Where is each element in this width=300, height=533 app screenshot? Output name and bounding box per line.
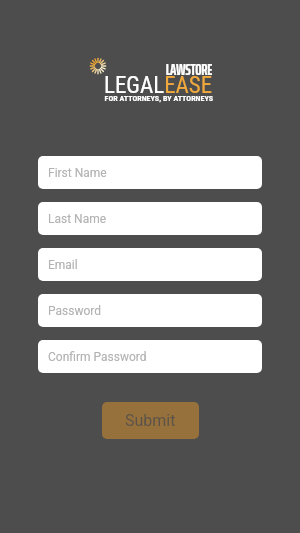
staticText: Password (48, 304, 102, 318)
staticText: First Name (48, 166, 107, 180)
button[interactable]: Email (38, 248, 262, 281)
button[interactable]: First Name (38, 156, 262, 189)
staticText: FOR ATTORNEYS, BY ATTORNEYS (101, 94, 213, 103)
staticText: LEGALEASE (104, 72, 213, 99)
staticText: Last Name (48, 212, 107, 226)
button[interactable]: Password (38, 294, 262, 327)
staticText: Email (48, 258, 78, 272)
staticText: Confirm Password (48, 350, 147, 364)
button[interactable]: Last Name (38, 202, 262, 235)
button[interactable]: Confirm Password (38, 340, 262, 373)
staticText: Submit (125, 411, 176, 430)
button[interactable]: Submit (102, 402, 199, 439)
staticText: LAWSTORE (100, 58, 212, 82)
